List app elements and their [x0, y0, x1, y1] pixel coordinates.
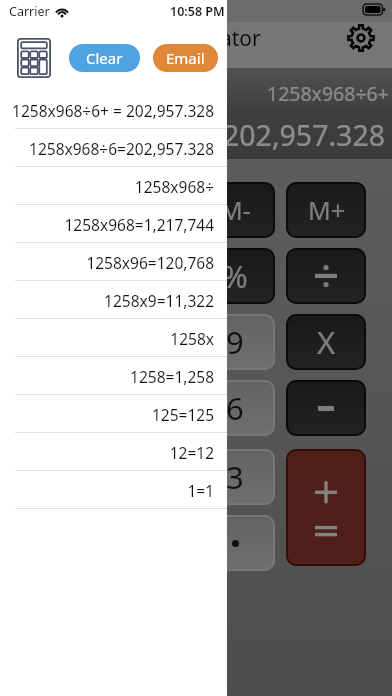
staticText: Clear: [86, 48, 123, 68]
button[interactable]: 5: [104, 380, 184, 436]
button[interactable]: Settings: [344, 21, 377, 54]
staticText: MC: [34, 193, 73, 227]
staticText: 1258x968÷6+: [267, 80, 389, 107]
button[interactable]: %: [195, 248, 275, 304]
staticText: M-: [220, 193, 251, 227]
staticText: %: [222, 255, 248, 297]
staticText: 1258x968=1,217,744: [0, 214, 214, 235]
button[interactable]: 1: [13, 449, 93, 505]
staticText: 1: [44, 456, 62, 498]
staticText: M+: [308, 193, 345, 227]
button[interactable]: 3: [195, 449, 275, 505]
button[interactable]: 1258x968÷: [0, 167, 227, 205]
button[interactable]: 12=12: [0, 433, 227, 471]
staticText: 2: [135, 456, 153, 498]
staticText: 12=12: [0, 442, 214, 463]
button[interactable]: 1258x968=1,217,744: [0, 205, 227, 243]
button[interactable]: MR: [104, 182, 184, 238]
button[interactable]: 1258=1,258: [0, 357, 227, 395]
staticText: 4: [44, 387, 62, 429]
button[interactable]: 8: [104, 314, 184, 370]
staticText: Carrier: [9, 3, 50, 20]
staticText: Email: [166, 48, 205, 68]
staticText: 9: [226, 321, 244, 363]
button[interactable]: 7: [13, 314, 93, 370]
button[interactable]: 6: [195, 380, 275, 436]
button[interactable]: M+: [286, 182, 366, 238]
staticText: Calculator: [161, 24, 261, 53]
staticText: 1258x96=120,768: [0, 252, 214, 273]
staticText: 7: [44, 321, 62, 363]
button[interactable]: 2: [104, 449, 184, 505]
button[interactable]: [286, 449, 366, 566]
button[interactable]: ±: [104, 248, 184, 304]
button[interactable]: C: [13, 248, 93, 304]
staticText: 5: [135, 387, 153, 429]
staticText: 1258=1,258: [0, 366, 214, 387]
staticText: 1258x968÷6=202,957.328: [0, 138, 214, 159]
button[interactable]: [286, 380, 366, 436]
staticText: 1258x: [0, 328, 214, 349]
button[interactable]: Email: [153, 44, 218, 72]
staticText: 6: [226, 387, 244, 429]
staticText: 202,957.328: [223, 116, 385, 155]
staticText: X: [317, 321, 336, 363]
button[interactable]: 1258x9=11,322: [0, 281, 227, 319]
staticText: 1=1: [0, 480, 214, 501]
button[interactable]: M-: [195, 182, 275, 238]
button[interactable]: 125=125: [0, 395, 227, 433]
button[interactable]: 1258x: [0, 319, 227, 357]
button[interactable]: 1258x968÷6=202,957.328: [0, 129, 227, 167]
staticText: 3: [226, 456, 244, 498]
staticText: 1258x9=11,322: [0, 290, 214, 311]
button[interactable]: X: [286, 314, 366, 370]
staticText: C: [43, 255, 63, 297]
button[interactable]: Clear: [69, 44, 140, 72]
staticText: 1258x968÷6+ = 202,957.328: [0, 100, 214, 121]
button[interactable]: 1258x968÷6+ = 202,957.328: [0, 91, 227, 129]
staticText: MR: [125, 193, 164, 227]
button[interactable]: 1=1: [0, 471, 227, 509]
staticText: 1258x968÷: [0, 176, 214, 197]
button[interactable]: MC: [13, 182, 93, 238]
staticText: 125=125: [0, 404, 214, 425]
staticText: 8: [135, 321, 153, 363]
staticText: 10:58 PM: [170, 3, 225, 20]
button[interactable]: [195, 515, 275, 571]
button[interactable]: 9: [195, 314, 275, 370]
button[interactable]: 4: [13, 380, 93, 436]
staticText: ±: [135, 255, 153, 297]
button[interactable]: 1258x96=120,768: [0, 243, 227, 281]
button[interactable]: [286, 248, 366, 304]
